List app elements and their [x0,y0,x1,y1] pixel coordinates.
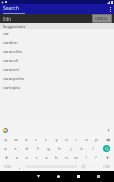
staticText: o [85,137,88,143]
staticText: m [74,155,78,161]
button[interactable]: x [21,153,31,162]
button[interactable]: Back [28,171,48,182]
button[interactable]: w [11,135,21,144]
staticText: f [37,146,39,152]
button[interactable]: Emoji [78,162,88,171]
staticText: g [47,146,50,152]
button[interactable]: Edit [3,16,92,22]
button[interactable]: carabin [0,38,114,47]
staticText: u [65,137,68,143]
button[interactable]: k [76,144,87,153]
button[interactable]: ?123 [0,162,15,171]
staticText: c [35,155,38,161]
button[interactable]: Menu [88,171,108,182]
staticText: carabin [3,40,18,46]
staticText: ?123 [103,165,110,169]
staticText: z [16,155,18,161]
staticText: caramel [3,67,19,73]
button[interactable]: c [31,153,41,162]
button[interactable]: Shift [0,153,12,162]
staticText: Suggestions [3,24,26,29]
button[interactable]: Search [3,5,106,14]
button[interactable]: u [61,135,71,144]
staticText: n [65,155,68,161]
staticText: Search [3,5,19,12]
staticText: h [58,146,61,152]
button[interactable]: ! [81,153,91,162]
staticText: k [80,146,83,152]
staticText: l [92,146,94,152]
staticText: q [4,137,7,143]
staticText: , [19,164,21,170]
staticText: caraqueña [3,76,24,82]
button[interactable]: g [43,144,54,153]
staticText: CANCEL [95,16,109,21]
button[interactable]: caracolito [0,47,114,56]
button[interactable]: Google [3,128,8,133]
button[interactable]: z [12,153,21,162]
staticText: caracolí [3,58,19,64]
button[interactable]: More options [106,4,114,14]
staticText: d [25,146,28,152]
button[interactable]: i [71,135,81,144]
staticText: j [70,146,72,152]
button[interactable]: j [65,144,76,153]
button[interactable]: Backspace [101,135,114,144]
staticText: b [55,155,58,161]
staticText: w [14,137,18,143]
button[interactable]: l [87,144,98,153]
button[interactable]: h [54,144,65,153]
button[interactable]: a [0,144,10,153]
button[interactable]: q [0,135,11,144]
button[interactable]: caraqueña [0,74,114,83]
button[interactable]: y [51,135,61,144]
button[interactable]: t [41,135,51,144]
staticText: x [25,155,28,161]
staticText: ! [85,155,87,161]
staticText: p [95,137,98,143]
staticText: r [35,137,37,143]
button[interactable]: f [32,144,43,153]
staticText: carbajito [3,85,21,91]
button[interactable]: n [61,153,71,162]
button[interactable]: Shift [101,153,114,162]
button[interactable]: Recents [68,171,88,182]
staticText: ?123 [4,165,11,169]
button[interactable]: e [21,135,31,144]
staticText: Edit [3,16,12,22]
button[interactable]: p [91,135,101,144]
button[interactable]: ? [91,153,101,162]
button[interactable]: b [51,153,61,162]
button[interactable]: r [31,135,41,144]
staticText: y [55,137,58,143]
button[interactable]: m [71,153,81,162]
staticText: a [4,146,7,152]
button[interactable]: carbajito [0,83,114,92]
button[interactable]: Home [48,171,68,182]
staticText: t [45,137,47,143]
staticText: v [45,155,48,161]
staticText: ? [95,155,97,161]
button[interactable]: Voice input [106,128,111,133]
staticText: car [3,31,10,37]
button[interactable]: ?123 [98,162,114,171]
button[interactable]: CANCEL [92,14,112,23]
staticText: s [14,146,17,152]
button[interactable]: d [21,144,32,153]
button[interactable]: car [0,29,114,38]
button[interactable]: o [81,135,91,144]
staticText: i [75,137,77,143]
button[interactable]: v [41,153,51,162]
button[interactable]: caracolí [0,56,114,65]
button[interactable]: caramel [0,65,114,74]
button[interactable]: s [10,144,21,153]
button[interactable]: Search [98,144,114,153]
button[interactable]: , [15,162,24,171]
staticText: e [25,137,28,143]
staticText: caracolito [3,49,23,55]
staticText: . [92,164,94,170]
